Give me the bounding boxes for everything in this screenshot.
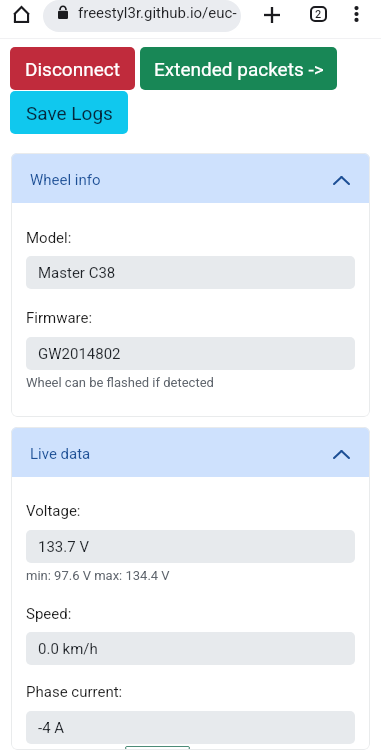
staticText: GW2014802 (38, 345, 121, 363)
button[interactable]: Extended packets -> (140, 47, 337, 90)
staticText: freestyl3r.github.io/euc- (78, 4, 237, 22)
button[interactable]: Search or type URL (43, 0, 241, 32)
staticText: Live data (30, 445, 91, 463)
button[interactable]: Wheel info (11, 153, 370, 203)
button[interactable]: Tabs (304, 0, 332, 28)
staticText: Speed: (26, 605, 72, 623)
staticText: Wheel can be flashed if detected (26, 375, 214, 390)
button[interactable] (125, 746, 190, 750)
staticText: Extended packets -> (154, 58, 324, 80)
button[interactable]: Home (8, 0, 34, 26)
staticText: Model: (26, 229, 72, 247)
staticText: Firmware: (26, 309, 93, 327)
staticText: Master C38 (38, 264, 116, 282)
staticText: min: 97.6 V max: 134.4 V (26, 568, 170, 583)
button[interactable]: Save Logs (10, 91, 128, 134)
staticText: 0.0 km/h (38, 640, 98, 658)
button[interactable]: More options (341, 0, 369, 28)
staticText: -4 A (38, 719, 65, 737)
button[interactable]: Live data (11, 427, 370, 477)
button[interactable]: Disconnect (10, 47, 135, 90)
staticText: Voltage: (26, 502, 81, 520)
staticText: 2 (315, 8, 322, 21)
staticText: Phase current: (26, 683, 123, 701)
button[interactable]: New tab (258, 0, 286, 28)
staticText: Save Logs (26, 102, 113, 124)
staticText: Disconnect (25, 58, 120, 80)
staticText: Wheel info (30, 171, 101, 189)
staticText: 133.7 V (38, 538, 89, 556)
